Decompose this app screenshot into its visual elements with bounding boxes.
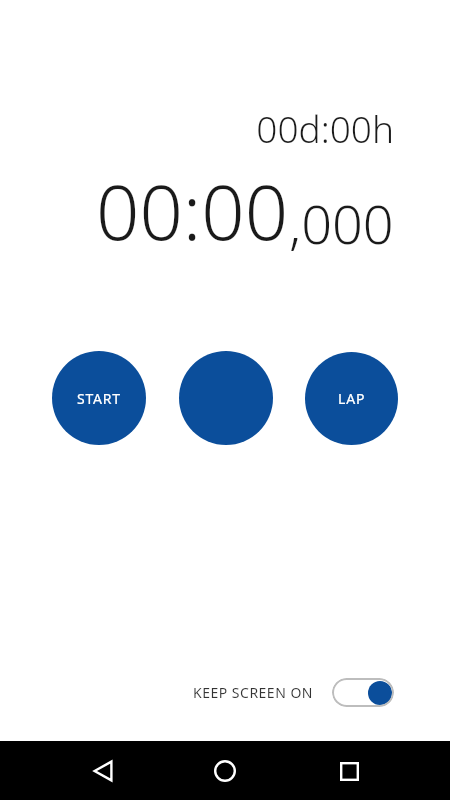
button[interactable]: Back: [80, 748, 126, 794]
button[interactable]: START: [52, 351, 146, 445]
staticText: LAP: [338, 389, 366, 408]
staticText: ,000: [289, 186, 394, 260]
button[interactable]: Reset: [179, 351, 273, 445]
button[interactable]: LAP: [305, 352, 398, 445]
button[interactable]: Home: [202, 748, 248, 794]
staticText: KEEP SCREEN ON: [193, 683, 314, 702]
staticText: 00d:00h: [256, 103, 394, 153]
button[interactable]: Keep screen on toggle: [332, 678, 394, 707]
staticText: 00:00: [96, 159, 289, 263]
staticText: START: [77, 389, 121, 408]
button[interactable]: Recent apps: [326, 748, 372, 794]
